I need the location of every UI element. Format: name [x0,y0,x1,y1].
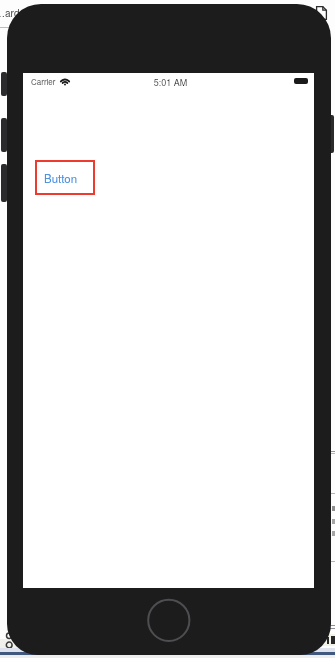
button[interactable]: Button [35,160,95,195]
staticText: Button [44,170,78,186]
staticText: …ard [0,6,20,20]
staticText: 5:01 AM [25,76,316,89]
staticText: Carrier [31,76,56,87]
other: File [316,6,327,20]
